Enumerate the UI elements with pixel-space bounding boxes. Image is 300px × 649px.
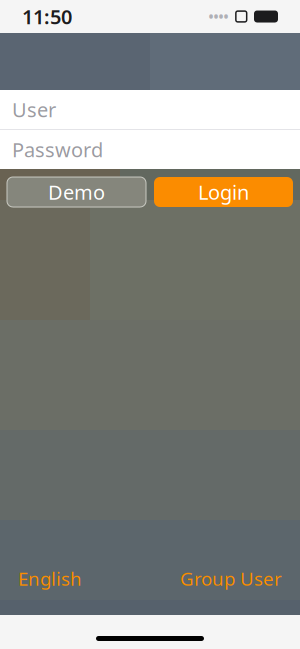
button[interactable]: Login (154, 177, 293, 207)
staticText: Demo (48, 179, 105, 205)
staticText: English (18, 566, 82, 591)
staticText: Password (12, 136, 103, 163)
staticText: User (12, 96, 56, 123)
staticText: •••• (208, 8, 228, 25)
button[interactable]: Password (0, 130, 300, 169)
button[interactable]: Group User (180, 560, 282, 597)
button[interactable]: English (18, 560, 82, 597)
staticText: Login (198, 179, 249, 205)
staticText: 11:50 (22, 3, 72, 30)
staticText: Group User (180, 566, 282, 591)
button[interactable]: User (0, 90, 300, 129)
button[interactable]: Demo (7, 177, 146, 207)
